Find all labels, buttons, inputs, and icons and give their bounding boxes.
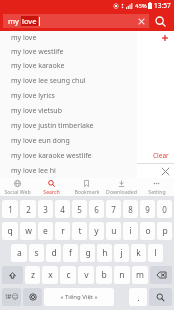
button[interactable]: y xyxy=(89,222,104,240)
staticText: 3 xyxy=(43,204,48,215)
button[interactable]: 0 xyxy=(157,200,172,218)
button[interactable]: x xyxy=(42,266,58,284)
button[interactable]: e xyxy=(38,222,53,240)
button[interactable] xyxy=(6,92,32,103)
staticText: Adele xyxy=(32,64,48,72)
button[interactable]: i xyxy=(123,222,138,240)
button[interactable]: Clear text xyxy=(135,15,147,27)
button[interactable] xyxy=(6,107,28,118)
button[interactable]: r xyxy=(55,222,70,240)
button[interactable]: z xyxy=(25,266,40,284)
staticText: c xyxy=(66,269,71,281)
staticText: . xyxy=(137,291,140,303)
button[interactable]: 5 xyxy=(72,200,87,218)
button[interactable]: Add xyxy=(160,33,170,43)
button[interactable]: 9 xyxy=(140,200,155,218)
button[interactable]: Clear xyxy=(153,151,169,160)
button[interactable]: 3 xyxy=(38,200,53,218)
button[interactable]: k xyxy=(131,244,146,262)
other: Shift xyxy=(9,272,16,279)
button[interactable]: w xyxy=(20,222,36,240)
button[interactable]: my love eun dong xyxy=(0,133,137,148)
button[interactable]: h xyxy=(97,244,112,262)
button[interactable]: my love karaoke xyxy=(0,59,137,73)
button[interactable]: !#☺ xyxy=(2,288,21,306)
staticText: 13:57 xyxy=(154,1,171,10)
staticText: h xyxy=(102,247,108,259)
button[interactable]: my love justin timberlake xyxy=(0,118,137,133)
staticText: 5 xyxy=(77,204,82,215)
button[interactable]: u xyxy=(106,222,121,240)
staticText: love xyxy=(22,16,37,26)
other: Backspace xyxy=(157,272,166,278)
button[interactable]: p xyxy=(157,222,172,240)
button[interactable]: Setting xyxy=(139,178,174,196)
button[interactable]: Downloaded xyxy=(104,178,139,196)
button[interactable]: my love lee seung chul xyxy=(0,73,137,88)
staticText: 45% xyxy=(135,2,147,10)
button[interactable]: s xyxy=(29,244,44,262)
button[interactable]: my love karaoke westlife xyxy=(0,148,137,163)
button[interactable]: l xyxy=(148,244,163,262)
button[interactable]: Shift xyxy=(2,266,23,284)
button[interactable]: Social Web xyxy=(0,178,34,196)
button[interactable]: v xyxy=(78,266,94,284)
button[interactable]: Backspace xyxy=(150,266,172,284)
staticText: d xyxy=(51,247,57,259)
button[interactable] xyxy=(6,77,26,88)
staticText: 2 xyxy=(26,204,31,215)
button[interactable]: 4 xyxy=(55,200,70,218)
button[interactable]: t xyxy=(72,222,87,240)
button[interactable]: my love westlife xyxy=(0,45,137,59)
staticText: t xyxy=(78,225,82,237)
button[interactable]: g xyxy=(80,244,95,262)
staticText: my love karaoke xyxy=(11,61,65,71)
staticText: m xyxy=(136,269,144,281)
button[interactable]: my love lyrics xyxy=(0,88,137,103)
button[interactable]: a xyxy=(11,244,27,262)
button[interactable]: « Tiếng Việt » xyxy=(44,288,114,306)
staticText: 6 xyxy=(94,204,99,215)
staticText: my xyxy=(8,16,21,26)
button[interactable]: 7 xyxy=(106,200,121,218)
button[interactable]: Search xyxy=(149,288,172,306)
button[interactable] xyxy=(6,62,24,73)
button[interactable]: Search xyxy=(34,178,69,196)
button[interactable]: f xyxy=(63,244,78,262)
staticText: Beyonce xyxy=(11,49,35,57)
button[interactable]: n xyxy=(114,266,130,284)
button[interactable]: b xyxy=(96,266,112,284)
button[interactable]: my love lee hi xyxy=(0,163,137,178)
staticText: 0 xyxy=(162,204,167,215)
button[interactable]: j xyxy=(114,244,129,262)
button[interactable]: 6 xyxy=(89,200,104,218)
button[interactable]: my xyxy=(8,14,147,28)
staticText: 7 xyxy=(111,204,116,215)
button[interactable]: o xyxy=(140,222,155,240)
staticText: w xyxy=(25,225,32,237)
button[interactable] xyxy=(29,77,51,88)
button[interactable]: m xyxy=(132,266,148,284)
button[interactable]: q xyxy=(2,222,18,240)
button[interactable] xyxy=(35,92,49,103)
button[interactable]: 8 xyxy=(123,200,138,218)
button[interactable]: d xyxy=(46,244,61,262)
staticText: Setting xyxy=(148,188,166,195)
button[interactable]: my love xyxy=(0,31,137,45)
staticText: my love westlife xyxy=(11,47,64,57)
staticText: s xyxy=(34,247,39,259)
button[interactable]: 1 xyxy=(2,200,18,218)
button[interactable]: Beyonce xyxy=(6,47,40,58)
button[interactable]: 2 xyxy=(20,200,36,218)
button[interactable]: Search xyxy=(149,14,171,28)
staticText: p xyxy=(162,225,168,237)
staticText: my love lee seung chul xyxy=(11,76,86,86)
staticText: r xyxy=(61,225,65,237)
button[interactable]: . xyxy=(129,288,147,306)
button[interactable]: my love vietsub xyxy=(0,103,137,118)
button[interactable] xyxy=(31,107,49,118)
button[interactable]: c xyxy=(60,266,76,284)
button[interactable]: Bookmark xyxy=(69,178,104,196)
button[interactable]: Adele xyxy=(27,62,53,73)
button[interactable]: Settings xyxy=(23,288,42,306)
